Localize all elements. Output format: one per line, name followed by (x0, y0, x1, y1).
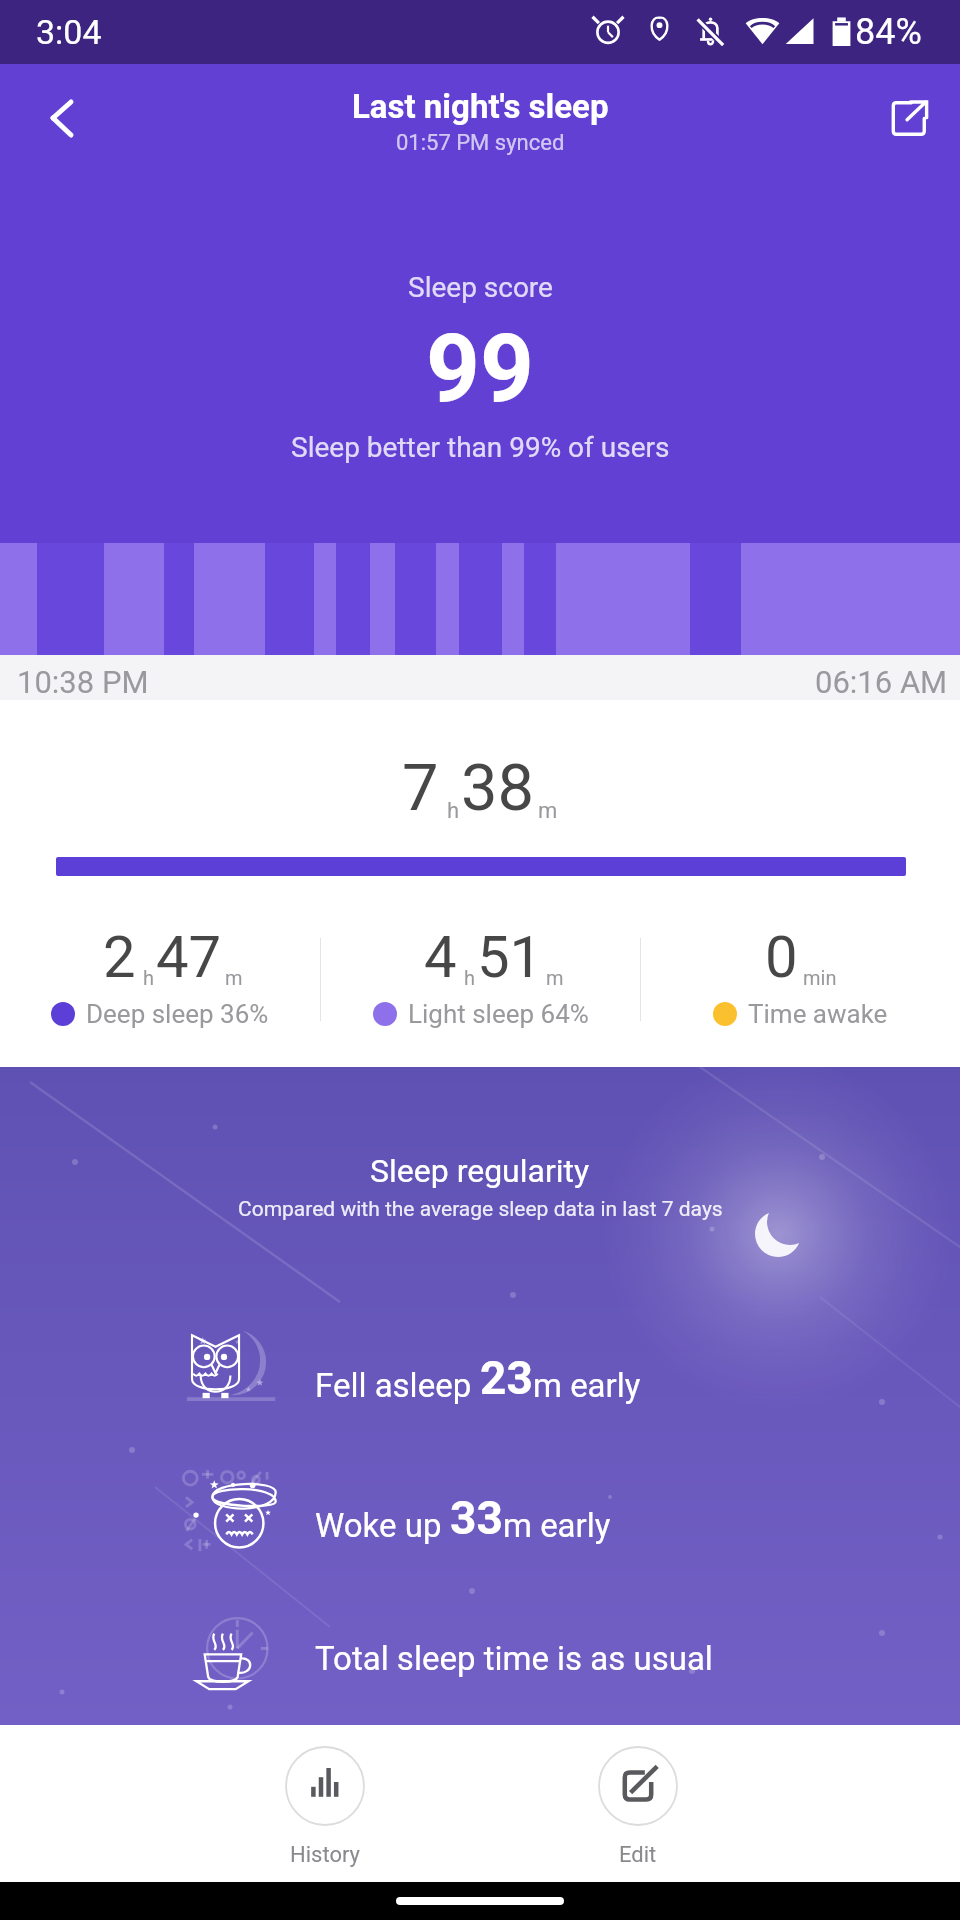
staticText: 33 (450, 1491, 503, 1545)
staticText: min (803, 966, 837, 989)
staticText: m (546, 966, 564, 989)
staticText: 7 (402, 750, 439, 826)
staticText: 10:38 PM (17, 664, 149, 700)
staticText: 06:16 AM (815, 664, 948, 700)
staticText: 3:04 (36, 12, 102, 52)
staticText: Deep sleep 36% (86, 999, 269, 1029)
staticText: 01:57 PM synced (396, 130, 565, 156)
staticText: Compared with the average sleep data in … (238, 1197, 723, 1222)
staticText: Woke up (315, 1506, 450, 1545)
staticText: 47 (156, 923, 222, 991)
staticText: m early (533, 1366, 641, 1405)
staticText: 99 (426, 314, 534, 424)
staticText: Sleep regularity (370, 1152, 590, 1190)
staticText: Light sleep 64% (408, 999, 589, 1029)
staticText: Fell asleep (315, 1366, 480, 1405)
staticText: 2 (103, 923, 136, 991)
staticText: h (447, 798, 460, 824)
staticText: Last night's sleep (352, 87, 609, 126)
staticText: h (464, 966, 476, 989)
staticText: 0 (765, 923, 798, 991)
staticText: m (225, 966, 243, 989)
staticText: Sleep score (408, 271, 553, 304)
staticText: Sleep better than 99% of users (291, 431, 670, 464)
staticText: Total sleep time is as usual (315, 1639, 713, 1678)
button[interactable]: Edit (578, 1746, 698, 1868)
staticText: History (290, 1842, 360, 1868)
button[interactable]: Share (870, 78, 950, 158)
staticText: m early (503, 1506, 611, 1545)
staticText: m (538, 798, 558, 824)
staticText: Edit (619, 1842, 657, 1868)
staticText: 84% (855, 11, 922, 53)
button[interactable]: History (265, 1746, 385, 1868)
staticText: Time awake (748, 999, 888, 1029)
staticText: 51 (477, 923, 543, 991)
staticText: 38 (461, 750, 535, 826)
staticText: 4 (424, 923, 457, 991)
button[interactable]: Back (22, 78, 102, 158)
staticText: 23 (480, 1351, 533, 1405)
staticText: h (143, 966, 155, 989)
